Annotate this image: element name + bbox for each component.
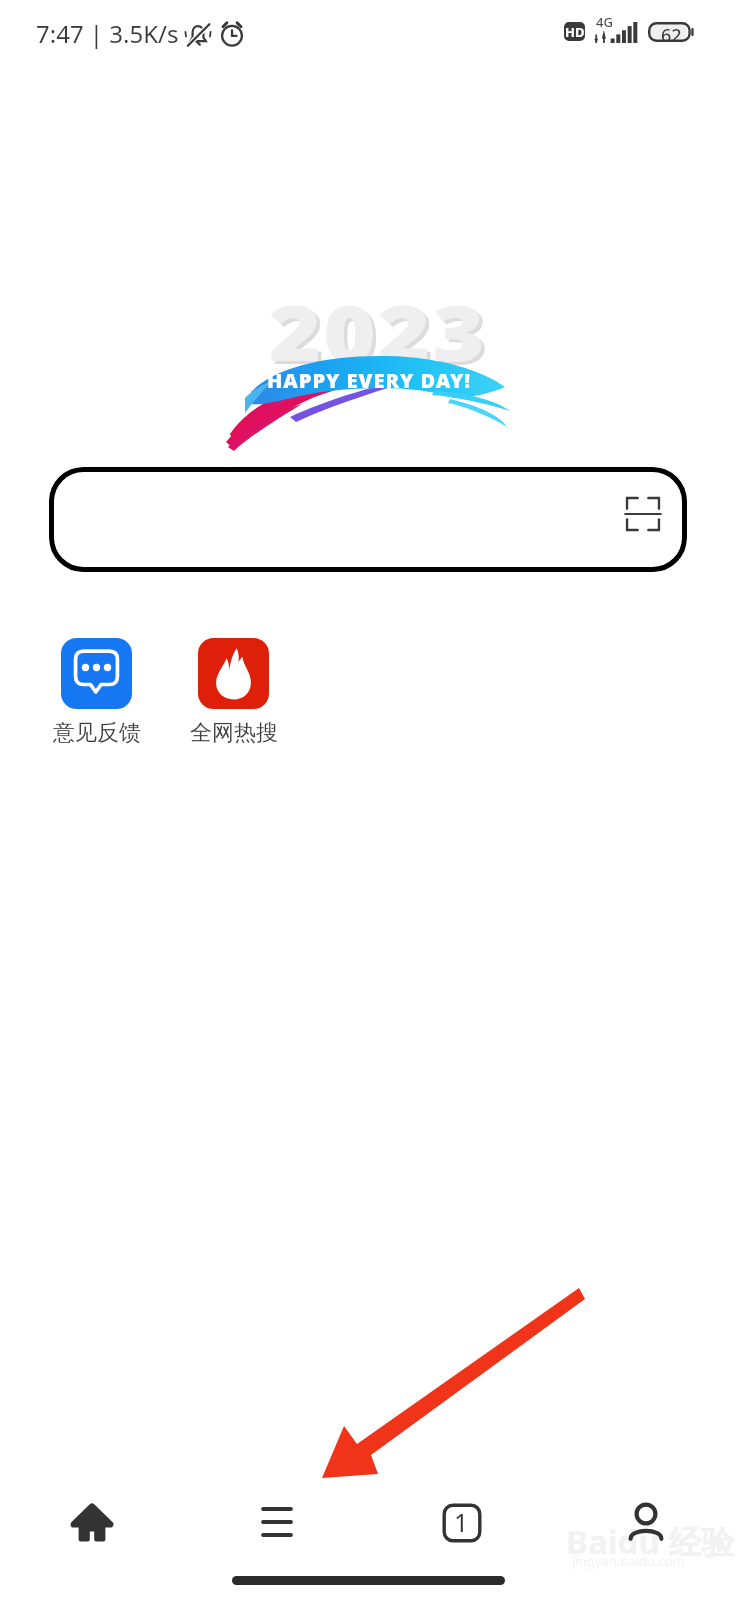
staticText: 7:47 | 3.5K/s [36,17,179,50]
button[interactable]: Scan QR code [624,495,662,533]
staticText: HAPPY EVERY DAY! [267,367,472,394]
button[interactable]: Home [0,1479,184,1567]
button[interactable]: Tabs [369,1479,554,1567]
staticText: 62 [661,23,682,48]
button[interactable]: 全网热搜 [178,638,289,747]
staticText: HD [565,23,585,41]
staticText: 4G [596,13,613,31]
button[interactable]: 意见反馈 [41,638,152,747]
button[interactable]: Scan QR code [49,467,687,572]
staticText: 2023 [273,283,491,387]
staticText: Baidu 经验 [566,1519,735,1564]
staticText: 2023 [269,280,488,384]
button[interactable]: Profile [554,1478,738,1566]
staticText: 全网热搜 [190,719,278,747]
staticText: jingyan.baidu.com [572,1552,685,1570]
button[interactable]: Bookmarks [184,1478,369,1566]
staticText: 1 [454,1505,469,1539]
staticText: 意见反馈 [53,719,141,747]
